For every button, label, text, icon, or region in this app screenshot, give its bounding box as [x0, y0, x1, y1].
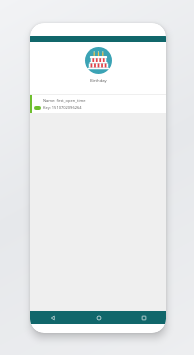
button[interactable]: Back — [30, 311, 76, 324]
button[interactable]: Home — [76, 311, 121, 324]
button[interactable]: Recents — [121, 311, 166, 324]
other: Enabled — [34, 106, 41, 110]
staticText: Birthday — [90, 78, 107, 84]
button[interactable]: Enabled — [30, 95, 166, 113]
staticText: Key: 1510702096264 — [43, 105, 82, 110]
staticText: Name: first_open_time — [43, 98, 86, 103]
button[interactable]: Birthday — [30, 42, 166, 94]
